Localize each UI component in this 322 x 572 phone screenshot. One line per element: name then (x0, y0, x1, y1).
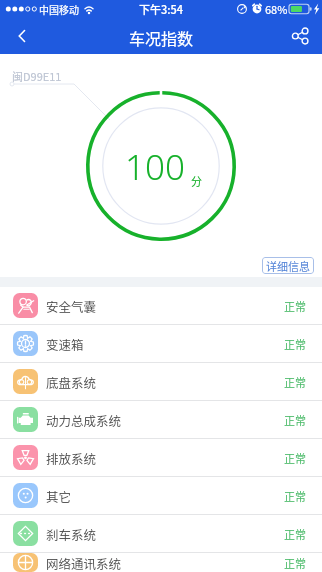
button[interactable]: 网络通讯系统 (0, 553, 322, 572)
staticText: 刹车系统 (46, 525, 97, 543)
button[interactable]: Share (278, 18, 322, 54)
staticText: 其它 (46, 487, 72, 505)
staticText: 正常 (284, 412, 306, 428)
button[interactable]: 刹车系统 (0, 515, 322, 552)
staticText: 变速箱 (46, 335, 84, 353)
staticText: 中国移动 (39, 2, 79, 16)
button[interactable]: 详细信息 (262, 257, 314, 274)
staticText: 分 (191, 173, 202, 189)
button[interactable]: 其它 (0, 477, 322, 514)
staticText: 正常 (284, 450, 306, 466)
staticText: 安全气囊 (46, 297, 97, 315)
staticText: 68% (265, 1, 288, 17)
staticText: 正常 (284, 336, 306, 352)
staticText: 排放系统 (46, 449, 97, 467)
staticText: 动力总成系统 (46, 411, 122, 429)
staticText: 正常 (284, 298, 306, 314)
button[interactable]: 排放系统 (0, 439, 322, 476)
staticText: 闽D99E11 (12, 68, 62, 84)
button[interactable]: 变速箱 (0, 325, 322, 362)
staticText: 详细信息 (266, 258, 310, 274)
button[interactable]: 安全气囊 (0, 287, 322, 324)
button[interactable]: Back (0, 18, 44, 54)
staticText: 车况指数 (129, 26, 194, 49)
staticText: 100 (125, 143, 185, 191)
staticText: 正常 (284, 488, 306, 504)
staticText: 正常 (284, 374, 306, 390)
staticText: 下午3:54 (139, 1, 184, 17)
staticText: 底盘系统 (46, 373, 97, 391)
staticText: 正常 (284, 526, 306, 542)
button[interactable]: 底盘系统 (0, 363, 322, 400)
button[interactable]: 动力总成系统 (0, 401, 322, 438)
staticText: 网络通讯系统 (46, 554, 122, 572)
staticText: 正常 (284, 555, 306, 571)
